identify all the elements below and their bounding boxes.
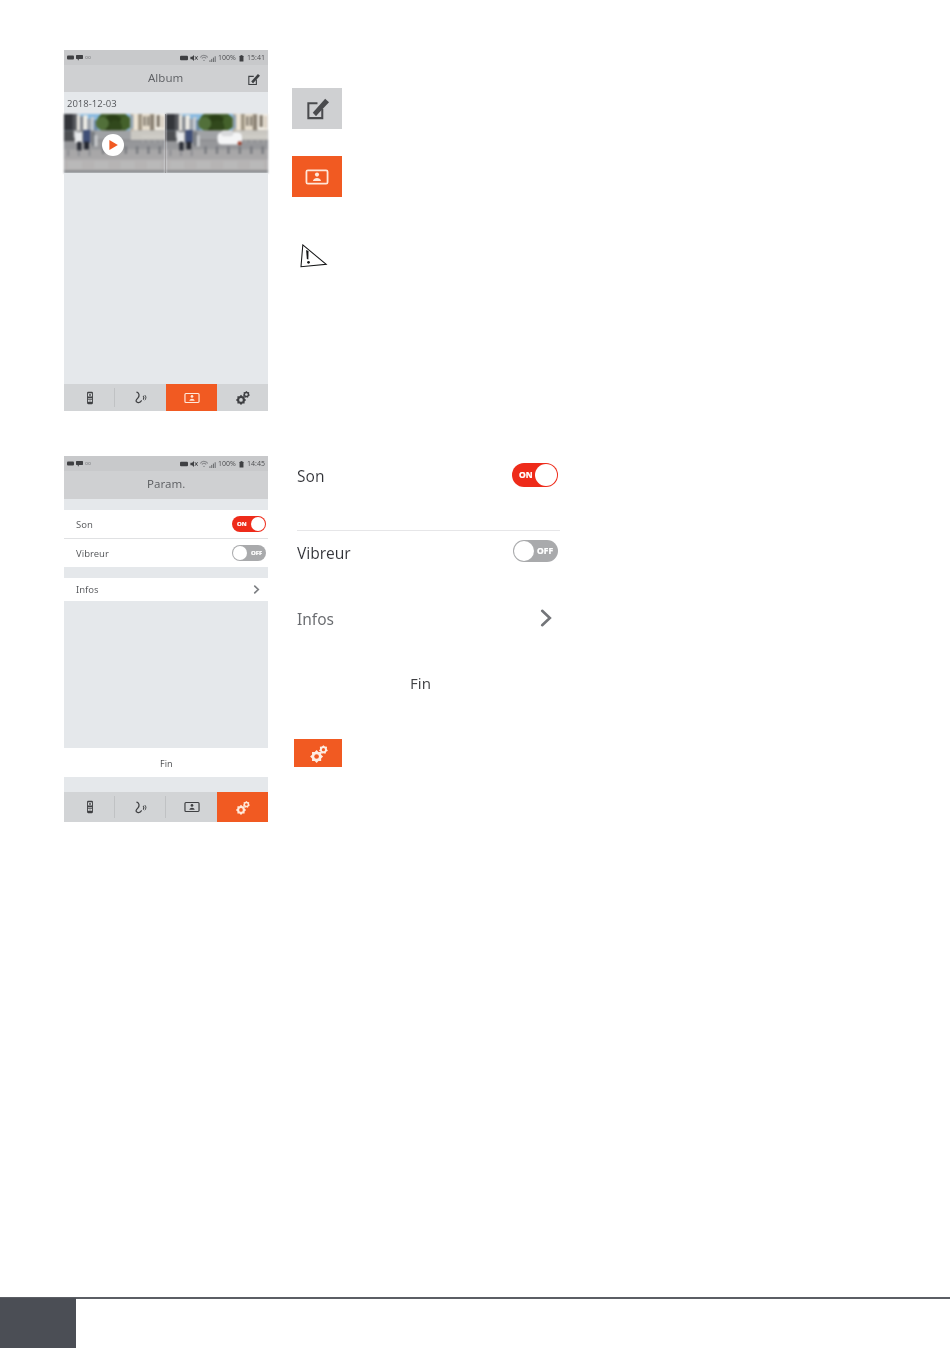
staticText: 100% — [218, 459, 236, 469]
staticText: Son — [76, 518, 93, 531]
button[interactable]: Play video — [64, 114, 165, 173]
button[interactable]: Intercom — [115, 384, 166, 411]
staticText: 15:41 — [247, 53, 265, 63]
staticText: ON — [519, 469, 533, 481]
button[interactable]: On — [512, 463, 558, 487]
button[interactable]: Monitor — [64, 792, 115, 822]
staticText: Son — [297, 465, 325, 486]
button[interactable]: Album — [292, 156, 342, 197]
button[interactable]: Vibreur — [297, 537, 560, 567]
staticText: 2018-12-03 — [67, 97, 117, 110]
button[interactable]: Edit — [245, 71, 261, 87]
button[interactable]: Monitor — [64, 384, 115, 411]
staticText: Infos — [297, 608, 334, 629]
staticText: ON — [237, 520, 247, 528]
button[interactable]: Album — [166, 792, 217, 822]
staticText: OFF — [537, 545, 554, 557]
staticText: Album — [148, 70, 184, 86]
staticText: Param. — [147, 476, 186, 492]
staticText: oo — [85, 54, 92, 61]
button[interactable]: Vibreur — [64, 539, 268, 567]
button[interactable]: Settings — [217, 384, 268, 411]
button[interactable]: Photo — [166, 114, 268, 173]
staticText: 100% — [218, 53, 236, 63]
button[interactable]: Intercom — [115, 792, 166, 822]
staticText: Vibreur — [297, 542, 351, 563]
button[interactable]: Off — [232, 545, 266, 561]
button[interactable]: Infos — [64, 578, 268, 601]
staticText: OFF — [251, 549, 263, 557]
staticText: Vibreur — [76, 547, 109, 560]
staticText: Fin — [160, 757, 173, 769]
button[interactable]: Son — [297, 460, 560, 490]
button[interactable]: Son — [64, 510, 268, 538]
staticText: 14:45 — [247, 459, 265, 469]
button[interactable]: Off — [513, 540, 558, 562]
button[interactable]: On — [232, 516, 266, 532]
button[interactable]: Edit album — [292, 88, 342, 129]
staticText: Fin — [410, 673, 431, 693]
staticText: Infos — [76, 583, 99, 596]
button[interactable]: Settings — [217, 792, 268, 822]
button[interactable]: Infos — [297, 603, 560, 633]
button[interactable]: Settings — [294, 739, 342, 767]
button[interactable]: Album — [166, 384, 217, 411]
staticText: oo — [85, 460, 92, 467]
